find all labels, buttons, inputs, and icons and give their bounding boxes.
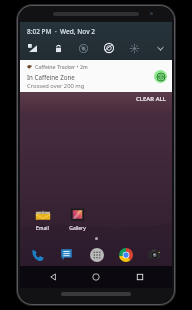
button[interactable]: Do not disturb bbox=[76, 41, 90, 55]
staticText: Caffeine Tracker • 2m bbox=[35, 63, 88, 70]
button[interactable]: Caffeine level bbox=[154, 70, 167, 83]
button[interactable]: Email bbox=[29, 206, 55, 232]
staticText: 8:02 PM · Wed, Nov 2 bbox=[27, 27, 96, 36]
staticText: Gallery bbox=[69, 225, 86, 232]
button[interactable]: Gallery bbox=[64, 206, 90, 232]
button[interactable]: Phone bbox=[28, 245, 47, 264]
button[interactable]: Apps bbox=[87, 245, 106, 264]
button[interactable]: Home bbox=[85, 266, 107, 288]
staticText: Crossed over 200 mg bbox=[27, 82, 85, 90]
button[interactable]: Brightness bbox=[127, 41, 141, 55]
button[interactable]: Lock rotation bbox=[51, 41, 65, 55]
button[interactable]: Chrome bbox=[116, 245, 135, 264]
button[interactable]: Expand bbox=[153, 41, 167, 55]
button[interactable]: Messages bbox=[57, 245, 76, 264]
button[interactable]: Auto rotate bbox=[102, 41, 116, 55]
button[interactable]: Caffeine Tracker • 2m bbox=[20, 60, 172, 92]
staticText: In Caffeine Zone bbox=[27, 73, 75, 81]
staticText: Email bbox=[36, 225, 49, 232]
button[interactable]: Recents bbox=[129, 266, 151, 288]
staticText: CLEAR ALL bbox=[136, 95, 166, 103]
button[interactable]: CLEAR ALL bbox=[130, 92, 172, 106]
button[interactable]: Back bbox=[42, 266, 64, 288]
button[interactable]: Camera bbox=[145, 245, 164, 264]
button[interactable]: Signal bbox=[25, 41, 39, 55]
